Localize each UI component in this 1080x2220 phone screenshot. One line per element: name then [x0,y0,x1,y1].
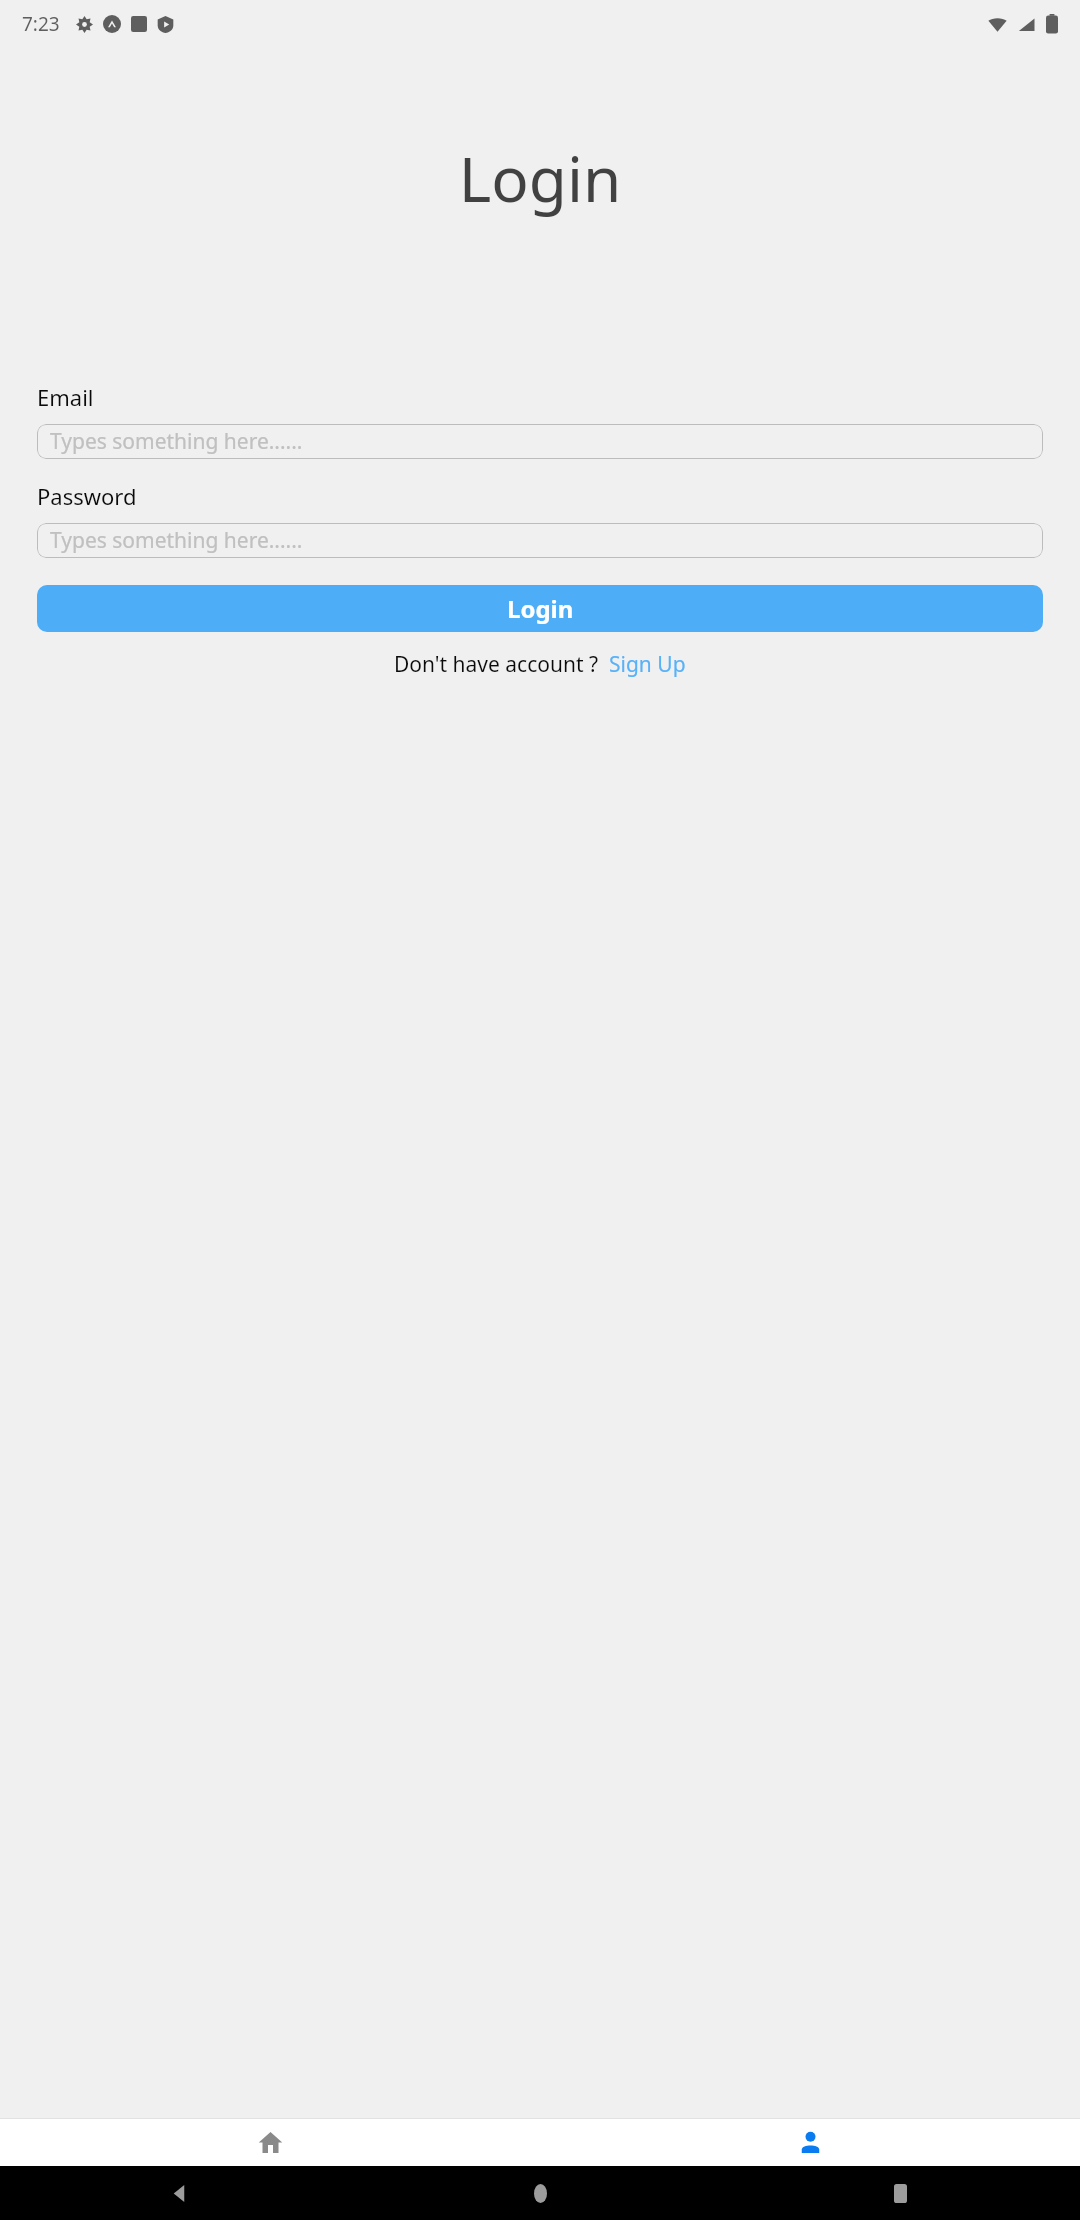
button[interactable]: Recent apps [720,2166,1080,2220]
button[interactable]: Types something here...... [37,523,1043,558]
staticText: 7:23 [22,11,60,37]
button[interactable]: Login [37,585,1043,632]
button[interactable]: Home [360,2166,720,2220]
staticText: Password [37,481,137,511]
button[interactable]: Types something here...... [37,424,1043,459]
staticText: Types something here...... [50,526,303,555]
staticText: Login [0,136,1080,220]
button[interactable]: Home [0,2118,540,2166]
staticText: Sign Up [609,650,686,679]
button[interactable]: Back [0,2166,360,2220]
staticText: Types something here...... [50,427,303,456]
staticText: Don't have account ? [394,650,599,679]
staticText: Login [507,592,574,625]
staticText: Email [37,382,94,412]
button[interactable]: Profile [540,2118,1080,2166]
button[interactable]: Sign Up [609,650,686,679]
